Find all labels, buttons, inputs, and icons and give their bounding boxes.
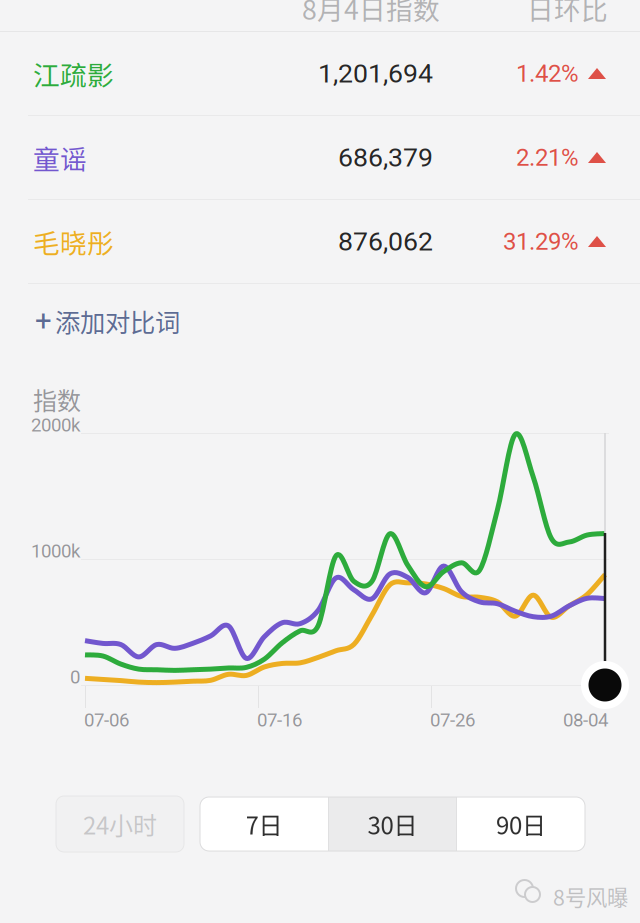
button[interactable]: 30日 <box>329 797 456 851</box>
staticText: 1000k <box>31 540 80 562</box>
staticText: 7日 <box>245 807 282 841</box>
button[interactable]: 江疏影 <box>0 32 640 115</box>
staticText: + <box>35 304 52 338</box>
staticText: 07-16 <box>257 709 302 731</box>
staticText: 876,062 <box>338 226 433 257</box>
button[interactable]: + <box>0 290 300 352</box>
button[interactable]: 童谣 <box>0 116 640 199</box>
staticText: 07-26 <box>430 709 475 731</box>
staticText: 8号风曝 <box>553 881 628 912</box>
button[interactable]: 毛晓彤 <box>0 200 640 283</box>
staticText: 指数 <box>33 382 81 417</box>
staticText: 2.21% <box>516 143 579 171</box>
staticText: 毛晓彤 <box>33 222 114 261</box>
button[interactable]: 90日 <box>457 797 585 851</box>
staticText: 07-06 <box>84 709 129 731</box>
staticText: 30日 <box>367 807 417 841</box>
button[interactable]: 24小时 <box>56 796 184 852</box>
staticText: 90日 <box>496 807 546 841</box>
button[interactable]: 7日 <box>200 797 328 851</box>
staticText: 江疏影 <box>33 54 114 93</box>
staticText: 日环比 <box>527 0 608 27</box>
staticText: 31.29% <box>503 227 579 255</box>
staticText: 2000k <box>31 414 80 436</box>
staticText: 08-04 <box>563 709 608 731</box>
staticText: 童谣 <box>33 138 87 177</box>
staticText: 24小时 <box>83 807 157 841</box>
staticText: 8月4日指数 <box>302 0 440 27</box>
staticText: 1.42% <box>516 59 579 87</box>
staticText: 0 <box>70 666 80 688</box>
staticText: 686,379 <box>338 142 433 173</box>
staticText: 添加对比词 <box>55 303 180 339</box>
staticText: 1,201,694 <box>318 58 433 89</box>
